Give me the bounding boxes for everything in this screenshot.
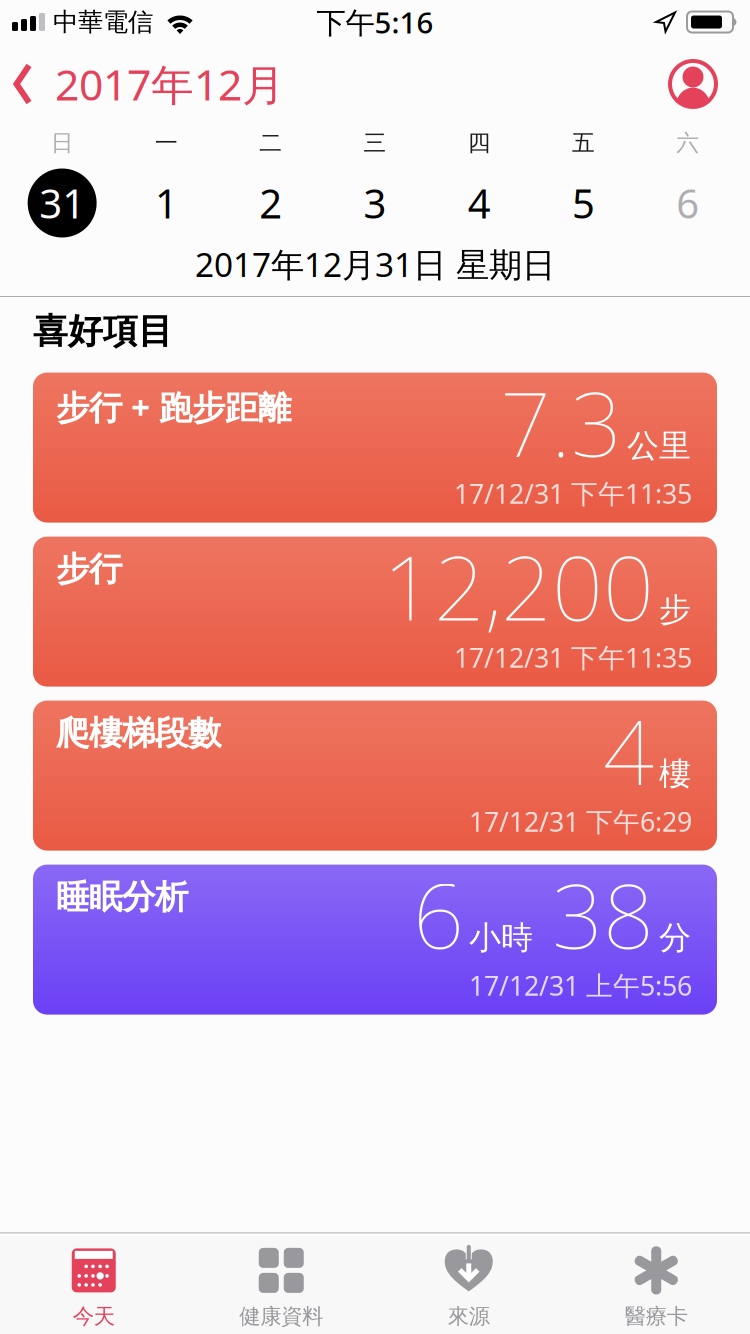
staticText: 2 — [259, 176, 282, 229]
staticText: 4 — [603, 691, 654, 809]
staticText: 公里 — [627, 426, 691, 465]
staticText: 3 — [363, 176, 386, 229]
staticText: 二 — [259, 129, 282, 157]
staticText: 一 — [155, 129, 178, 157]
staticText: 5 — [572, 176, 595, 229]
staticText: 6 — [413, 855, 464, 973]
staticText: 步行 + 跑步距離 — [56, 385, 291, 429]
staticText: 睡眠分析 — [56, 877, 188, 917]
button[interactable]: 步行 — [33, 537, 717, 687]
button[interactable]: 健康資料 — [187, 1233, 375, 1330]
staticText: 小時 — [469, 918, 533, 957]
button[interactable]: 步行 + 跑步距離 — [33, 373, 717, 523]
button[interactable]: 爬樓梯段數 — [33, 701, 717, 851]
staticText: 2017年12月 — [55, 56, 285, 112]
button[interactable]: 睡眠分析 — [33, 865, 717, 1015]
button[interactable]: 1 — [114, 176, 219, 229]
button[interactable]: 醫療卡 — [562, 1233, 750, 1330]
staticText: 31 — [39, 176, 85, 229]
staticText: 三 — [363, 129, 386, 157]
staticText: 1 — [155, 176, 178, 229]
staticText: 爬樓梯段數 — [56, 713, 221, 753]
staticText: 健康資料 — [239, 1303, 323, 1330]
button[interactable]: 3 — [323, 176, 427, 229]
staticText: 醫療卡 — [625, 1303, 688, 1330]
button[interactable] — [668, 59, 750, 109]
staticText: 日 — [51, 129, 74, 157]
staticText: 步 — [659, 590, 691, 629]
button[interactable]: 今天 — [0, 1233, 187, 1330]
staticText: 分 — [659, 918, 691, 957]
staticText: 38 — [552, 855, 654, 973]
staticText: 六 — [676, 129, 699, 157]
button[interactable]: 31 — [10, 168, 114, 237]
button[interactable]: 5 — [531, 176, 636, 229]
button[interactable]: 2017年12月 — [0, 56, 285, 112]
staticText: 17/12/31 上午5:56 — [469, 968, 692, 1003]
staticText: 中華電信 — [53, 6, 153, 37]
staticText: 來源 — [448, 1303, 490, 1330]
staticText: 2017年12月31日 星期日 — [195, 242, 555, 286]
button[interactable]: 來源 — [375, 1233, 562, 1330]
staticText: 17/12/31 下午11:35 — [454, 640, 692, 675]
staticText: 步行 — [56, 549, 122, 589]
staticText: 6 — [676, 176, 699, 229]
staticText: 喜好項目 — [33, 310, 173, 353]
staticText: 下午5:16 — [316, 2, 433, 41]
button[interactable]: 6 — [636, 176, 740, 229]
staticText: 7.3 — [500, 363, 622, 481]
button[interactable]: 2 — [219, 176, 323, 229]
staticText: 4 — [468, 176, 491, 229]
staticText: 17/12/31 下午6:29 — [469, 804, 692, 839]
staticText: 五 — [572, 129, 595, 157]
staticText: 今天 — [73, 1303, 115, 1330]
staticText: 17/12/31 下午11:35 — [454, 476, 692, 511]
staticText: 四 — [468, 129, 491, 157]
button[interactable]: 4 — [427, 176, 531, 229]
staticText: 樓 — [659, 754, 691, 793]
staticText: 12,200 — [383, 527, 654, 645]
